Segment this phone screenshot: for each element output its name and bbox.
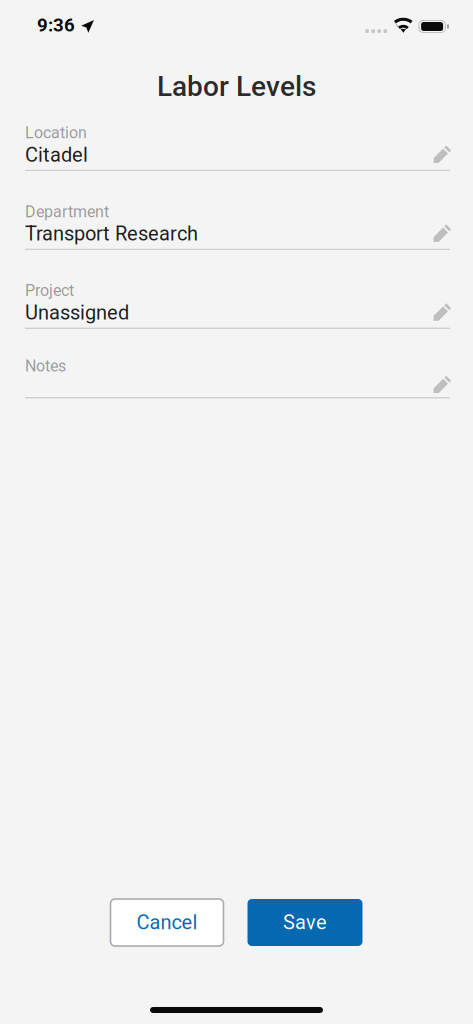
staticText: 9:36 xyxy=(37,14,75,36)
staticText: Save xyxy=(283,911,327,934)
staticText: Department xyxy=(25,202,109,221)
staticText: Project xyxy=(25,281,74,300)
staticText: Citadel xyxy=(25,143,88,166)
button[interactable]: Cancel xyxy=(110,899,223,946)
staticText: Labor Levels xyxy=(157,70,316,103)
button[interactable]: Location xyxy=(25,122,450,171)
button[interactable]: Notes xyxy=(25,349,450,398)
button[interactable]: Project xyxy=(25,280,450,329)
staticText: Unassigned xyxy=(25,301,129,324)
staticText: Location xyxy=(25,123,87,142)
button[interactable]: Save xyxy=(247,899,362,946)
staticText: Notes xyxy=(25,357,66,375)
staticText: Cancel xyxy=(136,911,197,934)
button[interactable]: Department xyxy=(25,201,450,250)
staticText: Transport Research xyxy=(25,222,198,245)
